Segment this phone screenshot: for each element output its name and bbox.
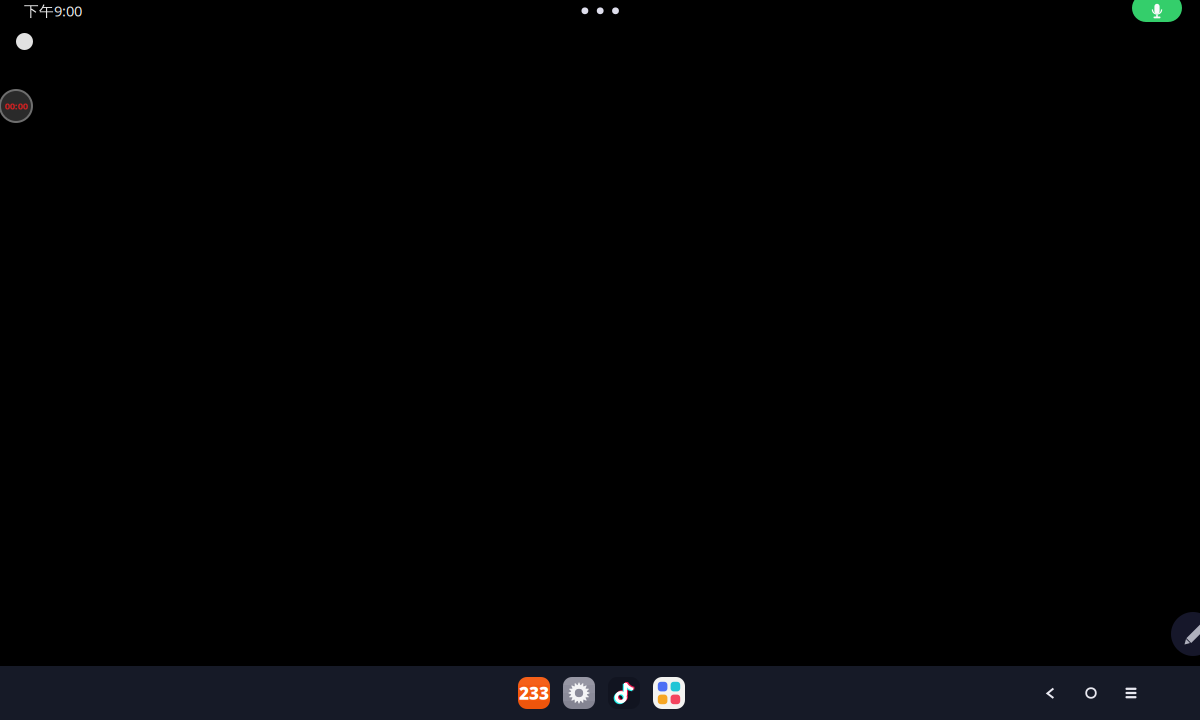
staticText: 233 xyxy=(519,681,549,704)
button[interactable]: Back xyxy=(1031,673,1071,713)
button[interactable]: Widget xyxy=(16,33,33,50)
button[interactable]: Compose xyxy=(1171,612,1200,656)
button[interactable]: Stopwatch 00:00 xyxy=(0,90,32,122)
button[interactable]: Settings xyxy=(563,677,595,709)
button[interactable]: 233 xyxy=(518,677,550,709)
staticText: 下午9:00 xyxy=(24,1,82,20)
staticText: 00:00 xyxy=(4,100,27,112)
button[interactable]: Home xyxy=(1071,673,1111,713)
button[interactable]: Recent apps xyxy=(1111,673,1151,713)
button[interactable]: Voice assistant xyxy=(1132,0,1182,22)
button[interactable]: TikTok xyxy=(608,677,640,709)
button[interactable]: All apps xyxy=(653,677,685,709)
